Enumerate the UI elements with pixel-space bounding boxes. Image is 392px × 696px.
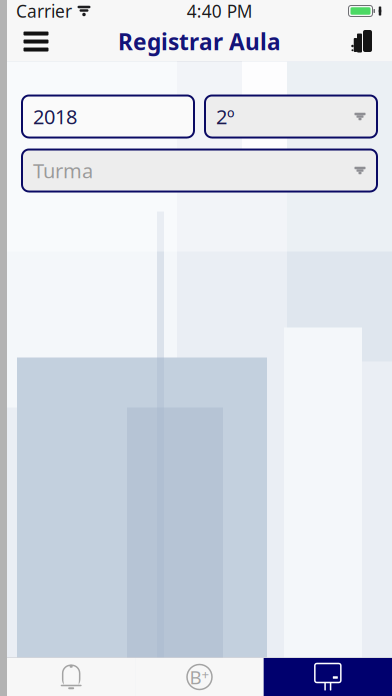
button[interactable]: 2º — [205, 95, 377, 137]
button[interactable]: Menu — [14, 21, 58, 61]
button[interactable]: Registrar Aula — [264, 658, 392, 696]
button[interactable]: Boletim — [135, 658, 264, 696]
staticText: Registrar Aula — [118, 26, 281, 56]
button[interactable]: 2018 — [22, 95, 194, 137]
button[interactable]: Notificações — [7, 658, 135, 696]
staticText: Carrier — [16, 0, 72, 22]
staticText: 2º — [216, 103, 235, 130]
staticText: 4:40 PM — [187, 0, 253, 22]
staticText: + — [201, 665, 209, 683]
staticText: B — [189, 665, 201, 689]
button[interactable]: Turma — [22, 149, 377, 191]
staticText: Turma — [33, 157, 93, 184]
staticText: 2018 — [33, 103, 77, 130]
button[interactable]: Apagar — [341, 21, 385, 61]
